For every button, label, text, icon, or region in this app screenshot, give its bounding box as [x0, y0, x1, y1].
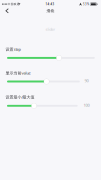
staticText: 设置step [5, 47, 20, 52]
staticText: 滑块 [46, 8, 54, 13]
staticText: 中国联通 [8, 3, 20, 6]
staticText: 14:43 [45, 2, 54, 6]
staticText: 显示当前value [5, 70, 30, 76]
staticText: slider [45, 26, 55, 32]
staticText: 100 [83, 102, 89, 108]
staticText: 设置最小/最大值 [5, 94, 34, 100]
staticText: 90 [84, 78, 88, 83]
staticText: 53% [83, 2, 89, 6]
button[interactable]: Back [0, 0, 16, 21]
